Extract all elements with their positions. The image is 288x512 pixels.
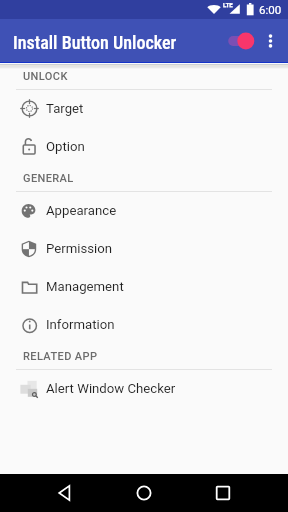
staticText: Permission <box>46 241 113 256</box>
button[interactable]: Recent apps <box>205 474 241 510</box>
button[interactable]: Management <box>0 268 288 306</box>
button[interactable]: Home <box>126 474 162 510</box>
button[interactable]: Target <box>0 90 288 128</box>
button[interactable]: Alert Window Checker <box>0 370 288 408</box>
button[interactable]: Enable unlocker <box>226 31 256 51</box>
button[interactable]: Information <box>0 306 288 344</box>
staticText: Install Button Unlocker <box>13 32 177 53</box>
button[interactable]: Back <box>47 474 83 510</box>
staticText: Option <box>46 139 85 154</box>
button[interactable]: More options <box>262 24 279 58</box>
button[interactable]: Permission <box>0 230 288 268</box>
staticText: Appearance <box>46 203 117 218</box>
staticText: Alert Window Checker <box>46 381 176 396</box>
staticText: RELATED APP <box>23 350 98 363</box>
staticText: GENERAL <box>23 172 74 185</box>
staticText: LTE <box>223 1 233 8</box>
staticText: Target <box>46 101 84 116</box>
staticText: 6:00 <box>259 3 282 16</box>
button[interactable]: Appearance <box>0 192 288 230</box>
staticText: Information <box>46 317 115 332</box>
staticText: Management <box>46 279 124 294</box>
button[interactable]: Option <box>0 128 288 166</box>
staticText: UNLOCK <box>23 70 68 83</box>
